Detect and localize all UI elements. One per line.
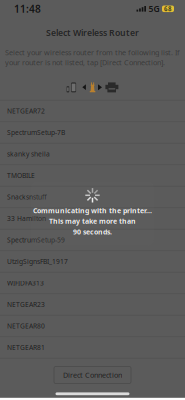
button[interactable]: SpectrumSetup-7B [0,122,185,144]
button[interactable]: NETGEAR23 [0,294,185,316]
staticText: UtzigSignsFBI_1917 [7,257,68,266]
staticText: SpectrumSetup-7B [7,128,65,137]
staticText: 11:48 [14,2,41,16]
staticText: SpectrumSetup-59 [7,235,65,245]
staticText: NETGEAR72 [7,106,45,116]
staticText: 68 [164,5,172,13]
staticText: NETGEAR23 [7,300,45,309]
button[interactable]: UtzigSignsFBI_1917 [0,251,185,273]
button[interactable]: Snacksnstuff [0,187,185,208]
staticText: Snacksnstuff [7,192,47,202]
button[interactable]: NETGEAR72 [0,101,185,122]
staticText: This may take more than [49,216,136,226]
staticText: Direct Connection [63,370,122,380]
button[interactable]: WIFIDFA313 [0,273,185,294]
button[interactable]: TMOBILE [0,165,185,187]
staticText: Select your wireless router from the fol… [5,48,180,67]
staticText: 33 Hamilton [7,214,46,223]
staticText: NETGEAR81 [7,343,45,352]
staticText: NETGEAR80 [7,321,45,331]
staticText: 5G [148,3,159,15]
staticText: 90 seconds. [73,227,112,236]
button[interactable]: skanky sheila [0,144,185,165]
staticText: Communicating with the printer... [33,206,152,215]
button[interactable]: 33 Hamilton [0,208,185,230]
button[interactable]: SpectrumSetup-59 [0,230,185,251]
button[interactable]: NETGEAR81 [0,337,185,359]
button[interactable]: NETGEAR80 [0,316,185,337]
staticText: WIFIDFA313 [7,278,44,288]
button[interactable]: Direct Connection [54,367,131,383]
staticText: Select Wireless Router [46,27,139,39]
staticText: TMOBILE [7,171,35,180]
staticText: skanky sheila [7,149,50,159]
